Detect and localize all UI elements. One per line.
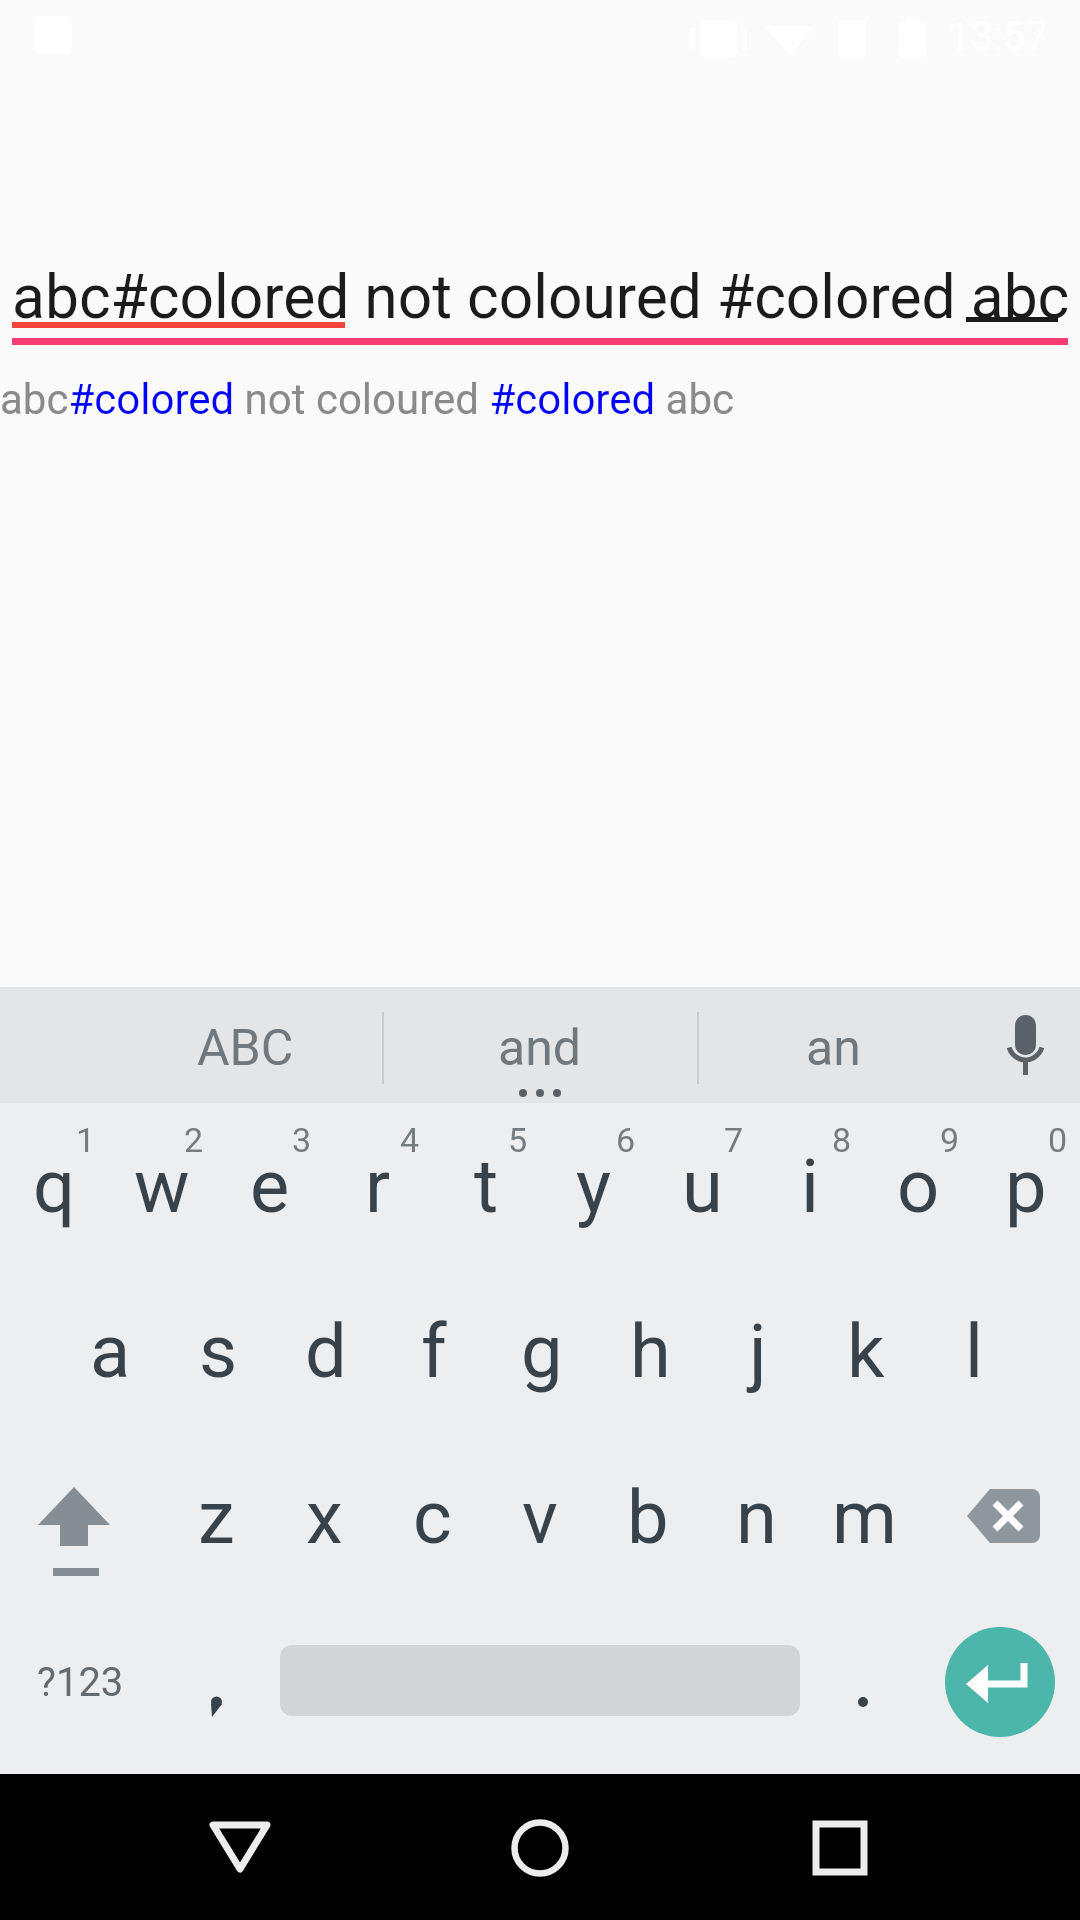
button[interactable]	[980, 998, 1070, 1098]
staticText: abc#colored not coloured #colored abc	[0, 375, 734, 424]
button[interactable]: t	[432, 1111, 540, 1261]
staticText: 5	[508, 1120, 528, 1160]
staticText: x	[306, 1474, 343, 1561]
staticText: l	[965, 1308, 983, 1395]
staticText: 0	[1048, 1120, 1068, 1160]
staticText: h	[630, 1308, 671, 1395]
button[interactable]: f	[380, 1276, 488, 1426]
button[interactable]: c	[378, 1442, 486, 1592]
button[interactable]: h	[596, 1276, 704, 1426]
staticText: f	[421, 1308, 447, 1395]
button[interactable]: q	[0, 1111, 108, 1261]
staticText: abc#colored not coloured #colored abc	[12, 262, 1070, 333]
button[interactable]: a	[56, 1276, 164, 1426]
staticText: y	[576, 1143, 612, 1230]
button[interactable]: y	[540, 1111, 648, 1261]
button[interactable]	[164, 1612, 272, 1752]
button[interactable]: m	[810, 1442, 918, 1592]
button[interactable]: e	[216, 1111, 324, 1261]
staticText: o	[897, 1143, 940, 1230]
button[interactable]	[820, 1620, 910, 1750]
staticText: t	[474, 1143, 499, 1230]
button[interactable]: j	[704, 1276, 812, 1426]
staticText: 2	[184, 1120, 204, 1160]
button[interactable]	[945, 1455, 1065, 1595]
staticText: c	[413, 1474, 452, 1561]
button[interactable]: ?123	[0, 1612, 160, 1752]
staticText: j	[749, 1308, 767, 1395]
staticText: 3	[292, 1120, 312, 1160]
staticText: ABC	[197, 1019, 294, 1078]
button[interactable]	[945, 1627, 1055, 1737]
staticText: b	[627, 1474, 669, 1561]
button[interactable]: b	[594, 1442, 702, 1592]
button[interactable]: r	[324, 1111, 432, 1261]
button[interactable]	[12, 255, 1068, 347]
button[interactable]: d	[272, 1276, 380, 1426]
button[interactable]	[190, 1797, 290, 1897]
button[interactable]: ABC	[95, 993, 395, 1103]
staticText: i	[801, 1143, 819, 1230]
button[interactable]: o	[864, 1111, 972, 1261]
staticText: g	[521, 1308, 563, 1395]
staticText: and	[498, 1019, 582, 1078]
staticText: 6	[616, 1120, 636, 1160]
button[interactable]	[20, 1455, 140, 1595]
button[interactable]: w	[108, 1111, 216, 1261]
button[interactable]: n	[702, 1442, 810, 1592]
button[interactable]: g	[488, 1276, 596, 1426]
staticText: q	[33, 1143, 76, 1230]
staticText: ?123	[37, 1659, 124, 1706]
button[interactable]: an	[713, 993, 953, 1103]
button[interactable]: z	[162, 1442, 270, 1592]
staticText: k	[847, 1308, 885, 1395]
button[interactable]: u	[648, 1111, 756, 1261]
staticText: an	[806, 1019, 861, 1078]
button[interactable]	[490, 1797, 590, 1897]
staticText: r	[365, 1143, 391, 1230]
button[interactable]: l	[920, 1276, 1028, 1426]
staticText: 7	[724, 1120, 744, 1160]
staticText: s	[199, 1308, 238, 1395]
staticText: 1	[76, 1120, 96, 1160]
staticText: v	[522, 1474, 558, 1561]
button[interactable]: k	[812, 1276, 920, 1426]
staticText: 4	[400, 1120, 420, 1160]
staticText: 9	[940, 1120, 960, 1160]
button[interactable]: p	[972, 1111, 1080, 1261]
staticText: w	[134, 1143, 190, 1230]
staticText: n	[736, 1474, 777, 1561]
staticText: p	[1005, 1143, 1047, 1230]
staticText: u	[682, 1143, 723, 1230]
staticText: m	[832, 1474, 897, 1561]
staticText: a	[90, 1308, 131, 1395]
staticText: 8	[832, 1120, 852, 1160]
button[interactable]: v	[486, 1442, 594, 1592]
button[interactable]: x	[270, 1442, 378, 1592]
staticText: z	[198, 1474, 235, 1561]
staticText: d	[305, 1308, 347, 1395]
button[interactable]: s	[164, 1276, 272, 1426]
button[interactable]: i	[756, 1111, 864, 1261]
staticText: e	[250, 1143, 290, 1230]
button[interactable]: and	[400, 993, 680, 1103]
button[interactable]	[790, 1797, 890, 1897]
